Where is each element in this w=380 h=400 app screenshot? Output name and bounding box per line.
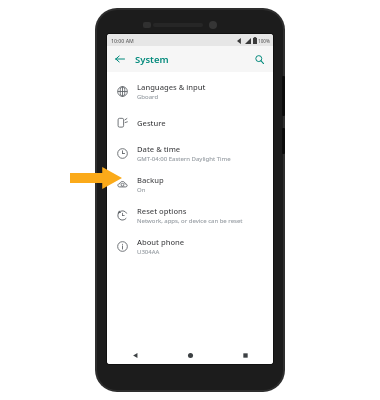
staticText: About phone — [137, 237, 185, 247]
staticText: Gesture — [137, 118, 166, 128]
button[interactable]: Recent apps — [218, 346, 273, 364]
staticText: Network, apps, or device can be reset — [137, 217, 243, 225]
staticText: GMT-04:00 Eastern Daylight Time — [137, 155, 231, 163]
button[interactable]: Date & time — [107, 138, 273, 169]
staticText: System — [135, 53, 169, 66]
staticText: Reset options — [137, 206, 187, 216]
button[interactable]: Home — [163, 346, 218, 364]
button[interactable]: Search — [251, 51, 267, 67]
staticText: Backup — [137, 175, 164, 185]
button[interactable]: Gesture — [107, 107, 273, 138]
staticText: 10:00 AM — [111, 37, 134, 44]
button[interactable]: Backup — [107, 169, 273, 200]
button[interactable]: Reset options — [107, 200, 273, 231]
staticText: 100% — [258, 38, 270, 44]
staticText: Gboard — [137, 93, 159, 101]
button[interactable]: Back — [112, 51, 128, 67]
button[interactable]: Languages & input — [107, 76, 273, 107]
staticText: Date & time — [137, 144, 181, 154]
staticText: Languages & input — [137, 82, 206, 92]
staticText: U304AA — [137, 248, 160, 256]
button[interactable]: About phone — [107, 231, 273, 262]
staticText: On — [137, 186, 146, 194]
button[interactable]: Back — [107, 346, 163, 364]
